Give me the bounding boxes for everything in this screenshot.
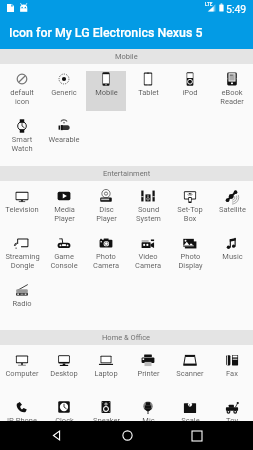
staticText: Game Console bbox=[50, 252, 78, 270]
button[interactable]: Photo Camera bbox=[86, 235, 126, 275]
staticText: eBook Reader bbox=[220, 88, 244, 106]
button[interactable]: Printer bbox=[128, 352, 168, 392]
staticText: Generic bbox=[51, 88, 77, 97]
button[interactable]: Mobile bbox=[86, 71, 126, 111]
staticText: Icon for My LG Electronics Nexus 5 bbox=[9, 25, 203, 40]
staticText: Disc Player bbox=[96, 205, 117, 223]
button[interactable]: Desktop bbox=[44, 352, 84, 392]
button[interactable]: Generic bbox=[44, 71, 84, 111]
staticText: Sound System bbox=[136, 205, 161, 223]
button[interactable]: Television bbox=[2, 188, 42, 228]
staticText: Desktop bbox=[50, 369, 78, 378]
button[interactable]: Toy bbox=[212, 399, 252, 421]
staticText: Mobile bbox=[95, 88, 118, 97]
button[interactable]: Computer bbox=[2, 352, 42, 392]
staticText: Mobile bbox=[115, 52, 138, 61]
button[interactable]: Mic bbox=[128, 399, 168, 421]
button[interactable]: Video Camera bbox=[128, 235, 168, 275]
button[interactable]: IP Phone bbox=[2, 399, 42, 421]
button[interactable]: Fax bbox=[212, 352, 252, 392]
button[interactable]: Laptop bbox=[86, 352, 126, 392]
button[interactable]: Game Console bbox=[44, 235, 84, 275]
button[interactable]: Streaming Dongle bbox=[2, 235, 42, 275]
button[interactable]: Set-Top Box bbox=[170, 188, 210, 228]
button[interactable]: Photo Display bbox=[170, 235, 210, 275]
button[interactable]: Sound System bbox=[128, 188, 168, 228]
button[interactable]: Radio bbox=[2, 282, 42, 322]
staticText: IP Phone bbox=[7, 416, 37, 421]
staticText: Set-Top Box bbox=[177, 205, 203, 223]
staticText: Scanner bbox=[176, 369, 204, 378]
button[interactable]: eBook Reader bbox=[212, 71, 252, 111]
staticText: Streaming Dongle bbox=[5, 252, 40, 270]
staticText: Home & Office bbox=[102, 333, 151, 342]
staticText: Media Player bbox=[54, 205, 75, 223]
staticText: Entertainment bbox=[103, 169, 151, 178]
staticText: 5:49 bbox=[226, 3, 247, 15]
button[interactable]: iPod bbox=[170, 71, 210, 111]
button[interactable]: Wearable bbox=[44, 118, 84, 158]
button[interactable]: Home bbox=[112, 421, 142, 450]
staticText: Tablet bbox=[138, 88, 159, 97]
staticText: Television bbox=[5, 205, 39, 214]
staticText: Radio bbox=[12, 299, 32, 308]
button[interactable]: Speaker bbox=[86, 399, 126, 421]
button[interactable]: Tablet bbox=[128, 71, 168, 111]
button[interactable]: Scanner bbox=[170, 352, 210, 392]
button[interactable]: Clock bbox=[44, 399, 84, 421]
staticText: iPod bbox=[182, 88, 198, 97]
staticText: Speaker bbox=[93, 416, 120, 421]
button[interactable]: Disc Player bbox=[86, 188, 126, 228]
staticText: Clock bbox=[55, 416, 74, 421]
staticText: Smart Watch bbox=[11, 135, 33, 153]
staticText: Printer bbox=[137, 369, 160, 378]
staticText: Computer bbox=[5, 369, 39, 378]
staticText: default icon bbox=[10, 88, 34, 106]
button[interactable]: Media Player bbox=[44, 188, 84, 228]
staticText: Satellite bbox=[219, 205, 246, 214]
button[interactable]: Music bbox=[212, 235, 252, 275]
staticText: Photo Camera bbox=[93, 252, 119, 270]
button[interactable]: Satellite bbox=[212, 188, 252, 228]
button[interactable]: Scale bbox=[170, 399, 210, 421]
staticText: Photo Display bbox=[178, 252, 203, 270]
staticText: Video Camera bbox=[135, 252, 161, 270]
staticText: Wearable bbox=[48, 135, 80, 144]
staticText: Music bbox=[222, 252, 243, 261]
staticText: Fax bbox=[226, 369, 238, 378]
staticText: Scale bbox=[181, 416, 200, 421]
button[interactable]: Smart Watch bbox=[2, 118, 42, 158]
staticText: Laptop bbox=[94, 369, 118, 378]
staticText: Toy bbox=[226, 416, 238, 421]
button[interactable]: Back bbox=[41, 421, 71, 450]
button[interactable]: default icon bbox=[2, 71, 42, 111]
staticText: LTE bbox=[205, 2, 213, 7]
staticText: Mic bbox=[142, 416, 155, 421]
button[interactable]: Icon for My LG Electronics Nexus 5 bbox=[0, 19, 253, 49]
button[interactable]: Recent apps bbox=[182, 421, 212, 450]
